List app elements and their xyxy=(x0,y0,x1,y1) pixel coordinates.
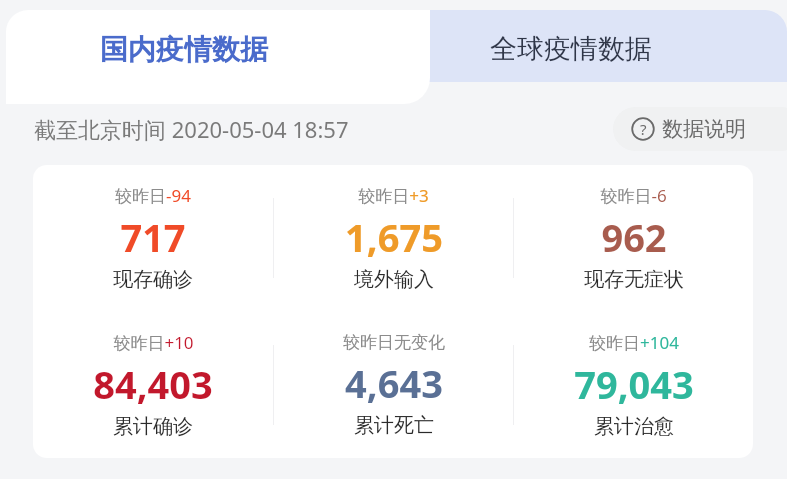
staticText: 累计确诊 xyxy=(113,414,193,439)
staticText: 717 xyxy=(120,211,186,263)
button[interactable]: 较昨日无变化 xyxy=(274,332,513,438)
staticText: 数据说明 xyxy=(662,116,746,142)
button[interactable]: 较昨日+10 xyxy=(33,331,273,439)
staticText: 1,675 xyxy=(345,211,443,263)
staticText: 国内疫情数据 xyxy=(100,32,268,67)
staticText: 84,403 xyxy=(93,358,213,410)
staticText: ? xyxy=(640,119,647,139)
staticText: 较昨日-6 xyxy=(600,184,667,207)
staticText: 4,643 xyxy=(345,357,443,409)
staticText: 较昨日-94 xyxy=(115,184,191,207)
staticText: 累计治愈 xyxy=(594,414,674,439)
button[interactable]: 全球疫情数据 xyxy=(404,10,787,82)
button[interactable]: 较昨日+3 xyxy=(274,184,513,292)
staticText: 较昨日+3 xyxy=(358,184,429,207)
button[interactable]: 国内疫情数据 xyxy=(6,10,430,104)
button[interactable]: 数据说明 Data explanation xyxy=(613,107,787,151)
staticText: 现存无症状 xyxy=(584,267,684,292)
staticText: 截至北京时间 2020-05-04 18:57 xyxy=(34,114,349,144)
button[interactable]: 较昨日-94 xyxy=(33,184,273,292)
button[interactable]: 较昨日+104 xyxy=(514,331,753,439)
staticText: 境外输入 xyxy=(354,267,434,292)
staticText: 现存确诊 xyxy=(113,267,193,292)
button[interactable]: 较昨日-6 xyxy=(514,184,753,292)
staticText: 79,043 xyxy=(574,358,694,410)
staticText: 全球疫情数据 xyxy=(490,32,652,66)
staticText: 较昨日+10 xyxy=(113,331,194,354)
staticText: 较昨日+104 xyxy=(589,331,679,354)
staticText: 累计死亡 xyxy=(354,413,434,438)
staticText: 962 xyxy=(601,211,667,263)
staticText: 较昨日无变化 xyxy=(343,332,445,353)
